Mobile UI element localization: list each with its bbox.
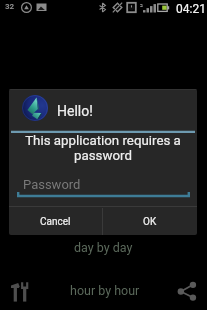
staticText: Cancel (40, 216, 71, 228)
button[interactable]: hour by hour (40, 271, 169, 310)
staticText: 04:21 (176, 2, 206, 16)
button[interactable]: Tools (5, 276, 35, 306)
button[interactable]: Cancel (9, 208, 102, 235)
button[interactable]: Share (172, 276, 202, 306)
button[interactable]: day by day (0, 236, 207, 258)
staticText: This application requires a password (15, 133, 191, 163)
staticText: day by day (74, 240, 133, 255)
staticText: Hello! (57, 103, 93, 119)
staticText: OK (143, 216, 157, 228)
staticText: Password (23, 177, 81, 192)
staticText: 32 (5, 2, 15, 11)
button[interactable]: OK (103, 208, 197, 235)
staticText: hour by hour (70, 283, 140, 298)
